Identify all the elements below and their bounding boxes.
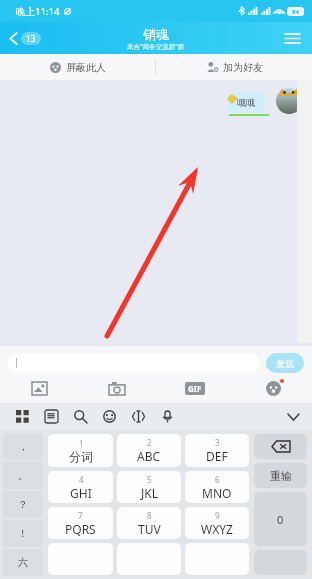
staticText: 5 <box>147 474 152 485</box>
staticText: MNO <box>202 485 232 501</box>
staticText: GIF <box>188 383 202 394</box>
staticText: WXYZ <box>201 521 233 537</box>
staticText: 2 <box>147 437 152 448</box>
staticText: DEF <box>206 448 228 464</box>
button[interactable]: 7 <box>48 507 113 539</box>
staticText: 84 <box>292 8 299 16</box>
staticText: 6 <box>215 474 220 485</box>
button[interactable] <box>8 353 260 373</box>
staticText: 哦哦 <box>237 97 255 108</box>
button[interactable]: 屏蔽此人 <box>0 54 155 80</box>
staticText: ！ <box>18 527 28 540</box>
button[interactable]: Emoji <box>234 373 312 403</box>
button[interactable]: Backspace <box>254 434 307 459</box>
staticText: 3 <box>215 437 220 448</box>
button[interactable]: 发送 <box>266 353 304 373</box>
staticText: 加为好友 <box>223 61 263 74</box>
staticText: 4 <box>79 474 84 485</box>
button[interactable]: ？ <box>3 491 43 518</box>
staticText: ABC <box>137 448 161 464</box>
button[interactable]: Text cursor <box>124 405 153 428</box>
button[interactable]: Keyboard <box>37 405 66 428</box>
staticText: 7 <box>78 510 83 521</box>
button[interactable]: 。 <box>3 462 43 489</box>
staticText: 来自"商务交流群"群 <box>127 42 185 51</box>
button[interactable]: Back <box>6 29 44 48</box>
button[interactable]: ， <box>3 433 43 460</box>
staticText: ？ <box>18 498 28 511</box>
button[interactable]: 0 <box>254 492 307 546</box>
button[interactable]: 5 <box>117 471 181 503</box>
button[interactable]: Hide keyboard <box>275 407 312 427</box>
staticText: 发送 <box>276 358 294 369</box>
staticText: 分词 <box>69 449 93 464</box>
button[interactable]: Emoji <box>95 405 124 428</box>
staticText: 0 <box>277 512 284 527</box>
staticText: 13 <box>26 33 36 44</box>
staticText: 9 <box>215 510 220 521</box>
staticText: ， <box>18 440 28 453</box>
staticText: 8 <box>147 510 152 521</box>
button[interactable]: Image <box>0 373 78 403</box>
button[interactable]: GIF <box>156 373 234 403</box>
staticText: 屏蔽此人 <box>66 61 106 74</box>
staticText: TUV <box>138 521 161 537</box>
button[interactable]: Voice <box>153 405 182 428</box>
button[interactable]: Camera <box>78 373 156 403</box>
button[interactable]: Search <box>66 405 95 428</box>
staticText: 六 <box>18 556 28 569</box>
button[interactable]: 六 <box>3 549 43 576</box>
button[interactable]: 4 <box>48 471 113 503</box>
button[interactable]: Apps <box>8 405 37 428</box>
staticText: PQRS <box>65 521 96 537</box>
button[interactable]: ！ <box>3 520 43 547</box>
staticText: 。 <box>18 469 28 482</box>
button[interactable]: 加为好友 <box>156 54 312 80</box>
button[interactable]: 2 <box>117 434 181 467</box>
staticText: JKL <box>141 485 158 501</box>
button[interactable]: Menu <box>281 29 304 48</box>
button[interactable]: 9 <box>185 507 249 539</box>
staticText: GHI <box>70 485 92 501</box>
button[interactable]: 8 <box>117 507 181 539</box>
button[interactable]: 3 <box>185 434 249 467</box>
button[interactable]: 1 <box>48 434 113 467</box>
staticText: 1 <box>79 438 84 449</box>
staticText: 重输 <box>270 469 292 483</box>
staticText: 晚上11:14 <box>16 5 60 18</box>
button[interactable]: 重输 <box>254 463 307 488</box>
staticText: 销魂 <box>143 26 169 42</box>
button[interactable]: 6 <box>185 471 249 503</box>
